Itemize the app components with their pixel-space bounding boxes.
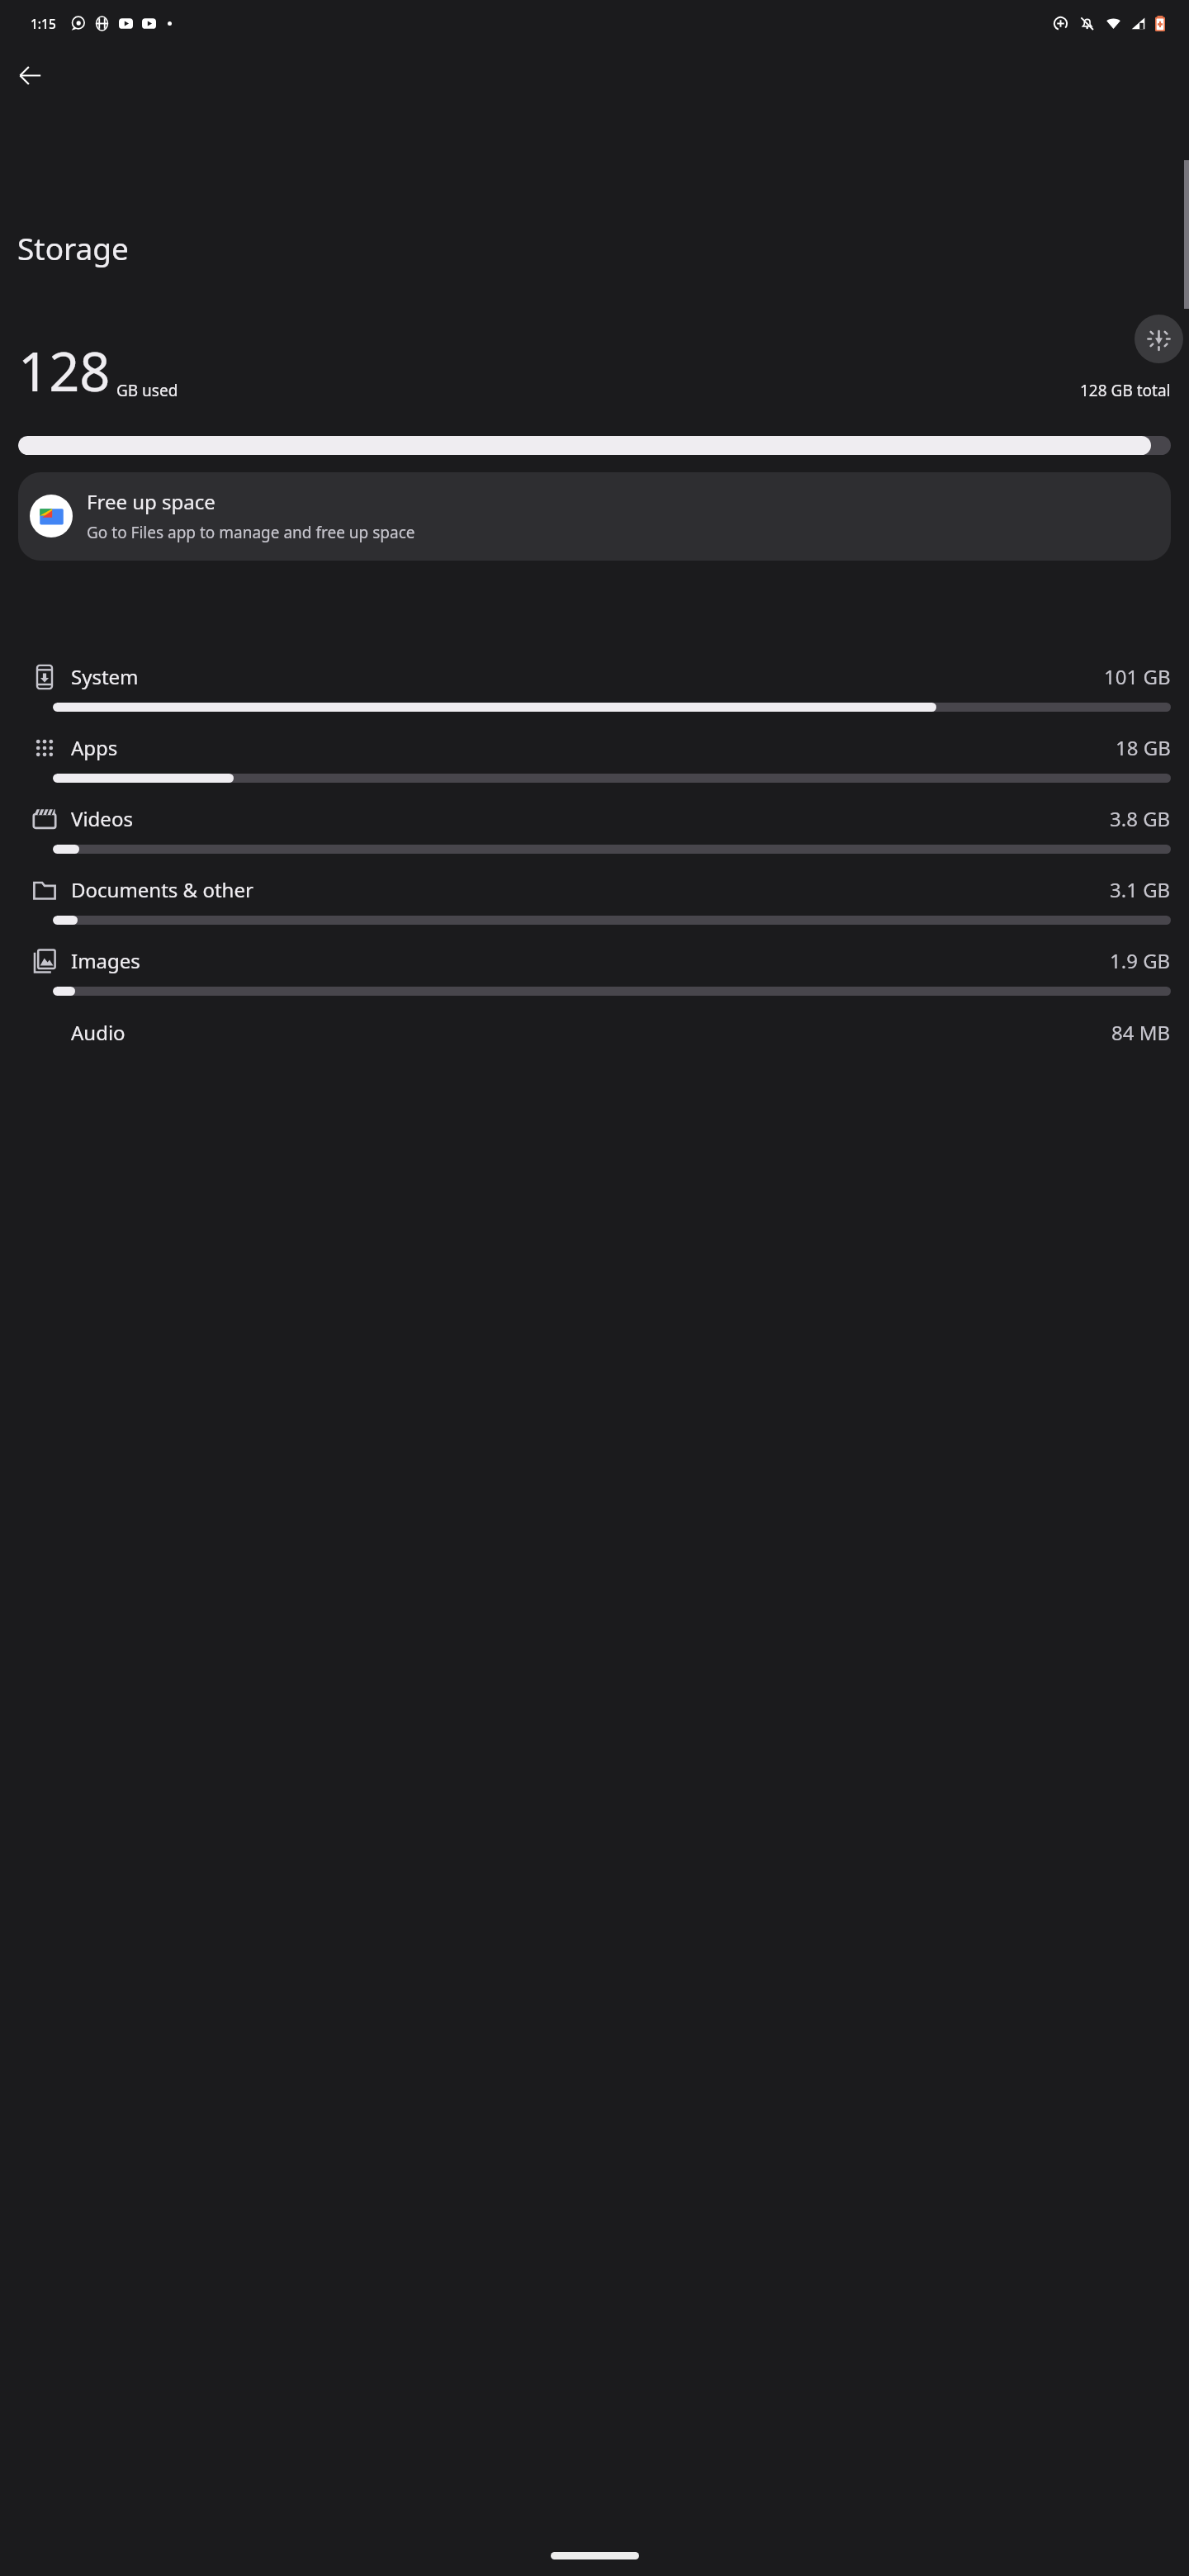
staticText: 1.9 GB [1110, 947, 1171, 974]
button[interactable]: System [0, 652, 1189, 723]
staticText: Documents & other [71, 876, 253, 903]
staticText: 3.1 GB [1110, 876, 1171, 903]
staticText: 84 MB [1111, 1019, 1171, 1046]
button[interactable]: Apps [0, 723, 1189, 794]
staticText: 1:15 [31, 15, 56, 32]
button[interactable]: Images [0, 936, 1189, 1007]
staticText: Storage [17, 227, 129, 268]
staticText: Go to Files app to manage and free up sp… [87, 522, 415, 543]
staticText: Audio [71, 1019, 126, 1046]
button[interactable]: Videos [0, 794, 1189, 865]
staticText: 128 GB total [1080, 380, 1171, 401]
button[interactable]: Back [7, 52, 53, 98]
button[interactable]: Scroll to bottom [1135, 315, 1183, 363]
staticText: Free up space [87, 488, 216, 515]
staticText: 18 GB [1116, 734, 1171, 761]
staticText: Videos [71, 805, 133, 832]
staticText: GB used [116, 380, 178, 401]
staticText: Apps [71, 734, 118, 761]
staticText: System [71, 663, 139, 690]
button[interactable]: Free up space [18, 472, 1171, 561]
staticText: 3.8 GB [1110, 805, 1171, 832]
button[interactable]: Audio [0, 1007, 1189, 1046]
staticText: 128 [18, 334, 111, 408]
staticText: 101 GB [1104, 663, 1171, 690]
staticText: Images [71, 947, 140, 974]
button[interactable]: Documents & other [0, 865, 1189, 936]
